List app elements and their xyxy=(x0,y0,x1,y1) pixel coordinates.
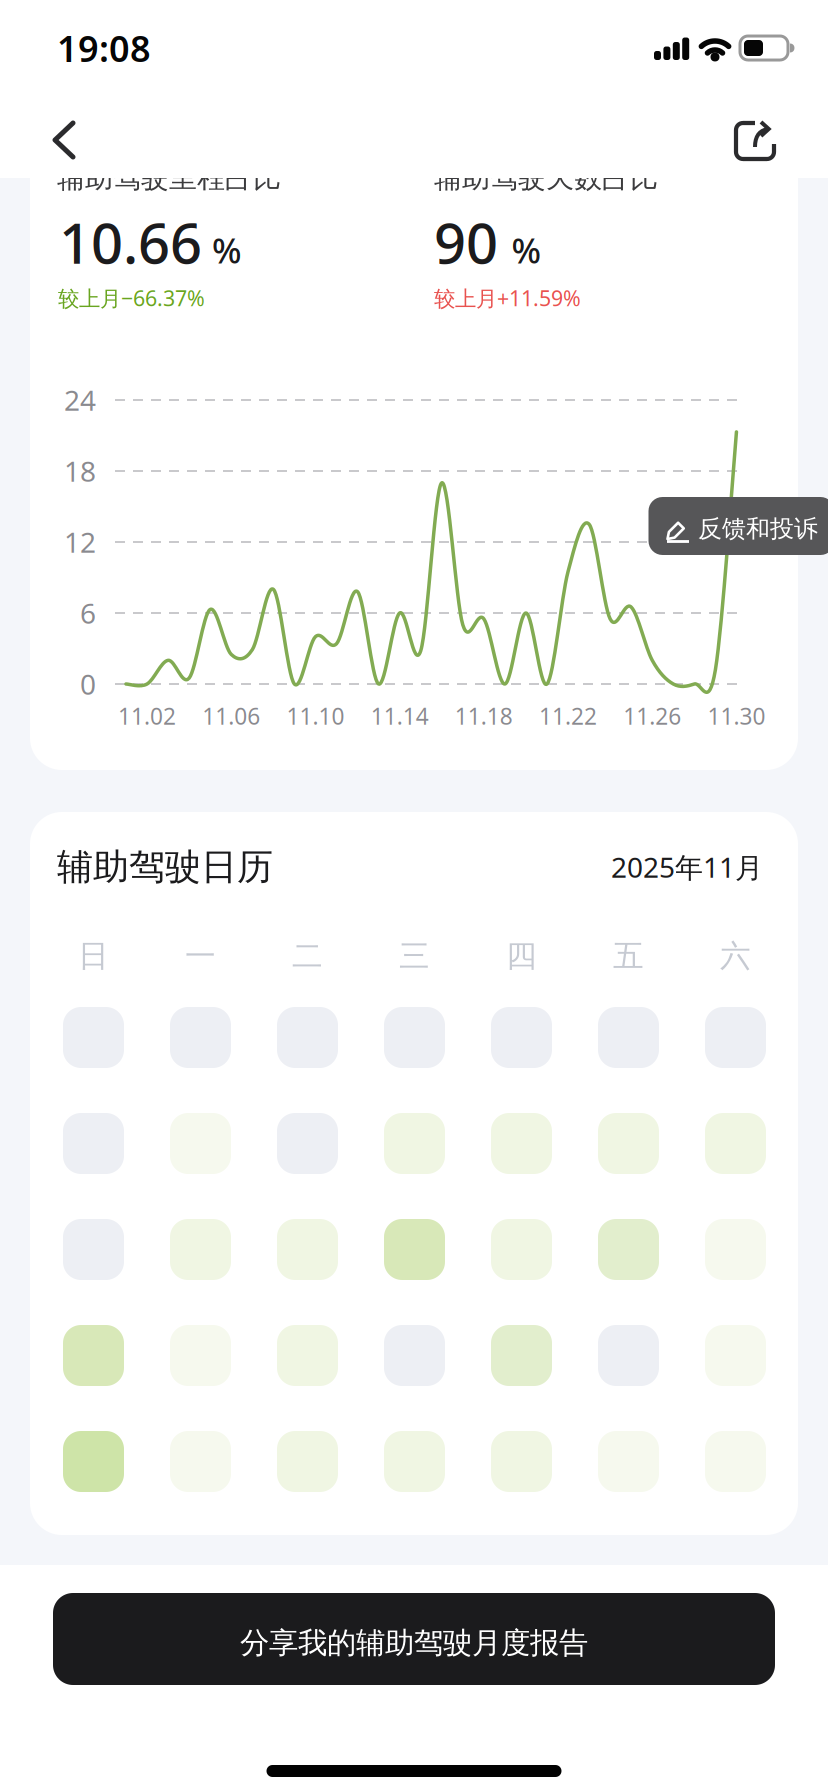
button[interactable]: 分享我的辅助驾驶月度报告 xyxy=(53,1593,775,1685)
staticText: 12 xyxy=(64,523,96,561)
staticText: 较上月−66.37% xyxy=(58,284,205,312)
staticText: 24 xyxy=(64,381,96,419)
staticText: 10.66 xyxy=(59,205,202,279)
staticText: 11.06 xyxy=(202,701,260,731)
staticText: 辅助驾驶日历 xyxy=(57,845,273,889)
staticText: 11.14 xyxy=(371,701,429,731)
staticText: 五 xyxy=(613,937,644,975)
staticText: 0 xyxy=(80,665,96,703)
staticText: 11.10 xyxy=(286,701,344,731)
staticText: 辅助驾驶里程占比 xyxy=(57,161,281,195)
staticText: 11.22 xyxy=(539,701,597,731)
staticText: 6 xyxy=(80,594,96,632)
staticText: 11.30 xyxy=(707,701,765,731)
staticText: 一 xyxy=(185,937,216,975)
staticText: 六 xyxy=(720,937,751,975)
staticText: 二 xyxy=(292,937,323,975)
staticText: 较上月+11.59% xyxy=(434,284,581,312)
staticText: 11.02 xyxy=(118,701,176,731)
staticText: 四 xyxy=(506,937,537,975)
staticText: 90 xyxy=(434,205,498,279)
staticText: 19:08 xyxy=(57,24,151,72)
button[interactable]: 反馈和投诉 xyxy=(648,497,828,555)
staticText: 分享我的辅助驾驶月度报告 xyxy=(240,1625,588,1661)
staticText: 11.26 xyxy=(623,701,681,731)
staticText: 辅助驾驶天数占比 xyxy=(434,161,658,195)
button[interactable]: Back xyxy=(43,113,103,169)
staticText: 2025年11月 xyxy=(611,848,763,886)
staticText: 反馈和投诉 xyxy=(698,514,818,543)
staticText: % xyxy=(511,227,541,273)
staticText: 18 xyxy=(64,452,96,490)
staticText: 11.18 xyxy=(455,701,513,731)
staticText: 三 xyxy=(399,937,430,975)
staticText: 日 xyxy=(78,937,109,975)
button[interactable]: Share xyxy=(726,113,786,169)
staticText: % xyxy=(212,227,242,273)
